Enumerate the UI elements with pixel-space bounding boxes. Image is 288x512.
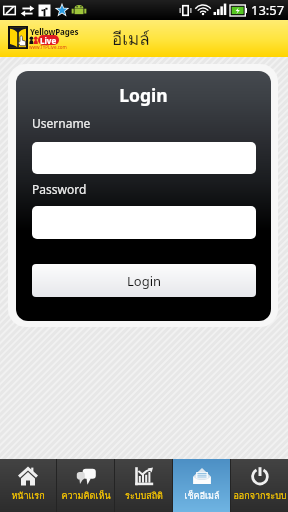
staticText: ออกจากระบบ [233,489,287,503]
staticText: ระบบสถิติ [125,489,163,503]
button[interactable]: ความคิดเห็น [57,459,114,512]
button[interactable]: Password input [32,206,256,239]
button[interactable]: หน้าแรก [0,459,56,512]
button[interactable]: ออกจากระบบ [231,459,288,512]
staticText: 13:57 [251,1,285,19]
staticText: YellowPages [30,26,79,37]
staticText: Login [127,272,162,290]
staticText: หน้าแรก [11,489,45,503]
button[interactable]: Username input [32,142,256,174]
button[interactable]: Login [32,264,256,297]
staticText: Live [40,35,57,45]
staticText: Login [16,83,271,107]
staticText: Username [32,115,91,131]
staticText: ความคิดเห็น [61,489,111,503]
staticText: เช็คอีเมล์ [184,489,220,503]
staticText: อีเมล์ [112,25,150,52]
staticText: Password [32,181,87,197]
button[interactable]: ระบบสถิติ [115,459,172,512]
staticText: www.TYPLive.com [29,44,67,50]
button[interactable]: เช็คอีเมล์ [173,459,230,512]
